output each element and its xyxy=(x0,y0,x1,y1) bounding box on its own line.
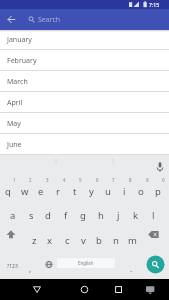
staticText: , xyxy=(29,263,32,274)
staticText: g xyxy=(80,209,86,222)
staticText: k xyxy=(133,209,139,222)
staticText: ?123 xyxy=(7,263,18,270)
staticText: March xyxy=(7,77,28,87)
staticText: . xyxy=(130,263,133,274)
staticText: s xyxy=(29,209,34,222)
staticText: 2 xyxy=(29,177,32,183)
staticText: l xyxy=(152,209,155,222)
staticText: w xyxy=(21,185,29,198)
staticText: 8 xyxy=(129,177,132,183)
staticText: 1 xyxy=(13,177,16,183)
staticText: x xyxy=(47,234,53,247)
staticText: t xyxy=(73,185,77,198)
staticText: June xyxy=(7,140,22,150)
staticText: April xyxy=(7,98,23,108)
staticText: 6 xyxy=(96,177,99,183)
staticText: c xyxy=(65,234,70,247)
staticText: 9 xyxy=(146,177,149,183)
staticText: May xyxy=(7,119,21,129)
staticText: i xyxy=(123,185,126,198)
staticText: 7:15 xyxy=(149,1,160,8)
staticText: a xyxy=(10,209,16,222)
staticText: h xyxy=(98,209,104,222)
staticText: q xyxy=(5,185,11,198)
staticText: English xyxy=(78,260,94,266)
staticText: Search xyxy=(38,15,61,25)
staticText: e xyxy=(38,185,44,198)
staticText: r xyxy=(56,185,60,198)
staticText: j xyxy=(117,209,120,222)
staticText: f xyxy=(64,209,68,222)
staticText: p xyxy=(155,185,161,198)
staticText: y xyxy=(89,185,94,198)
staticText: b xyxy=(96,234,102,247)
staticText: 4 xyxy=(63,177,66,183)
staticText: u xyxy=(105,185,111,198)
staticText: 3 xyxy=(46,177,49,183)
staticText: d xyxy=(45,209,51,222)
staticText: 7 xyxy=(112,177,115,183)
staticText: n xyxy=(113,234,119,247)
staticText: o xyxy=(138,185,144,198)
staticText: January xyxy=(7,35,32,45)
staticText: z xyxy=(32,234,37,247)
staticText: 5 xyxy=(79,177,82,183)
staticText: 0 xyxy=(162,177,165,183)
staticText: February xyxy=(7,56,37,66)
staticText: v xyxy=(81,234,86,247)
staticText: m xyxy=(128,234,137,247)
